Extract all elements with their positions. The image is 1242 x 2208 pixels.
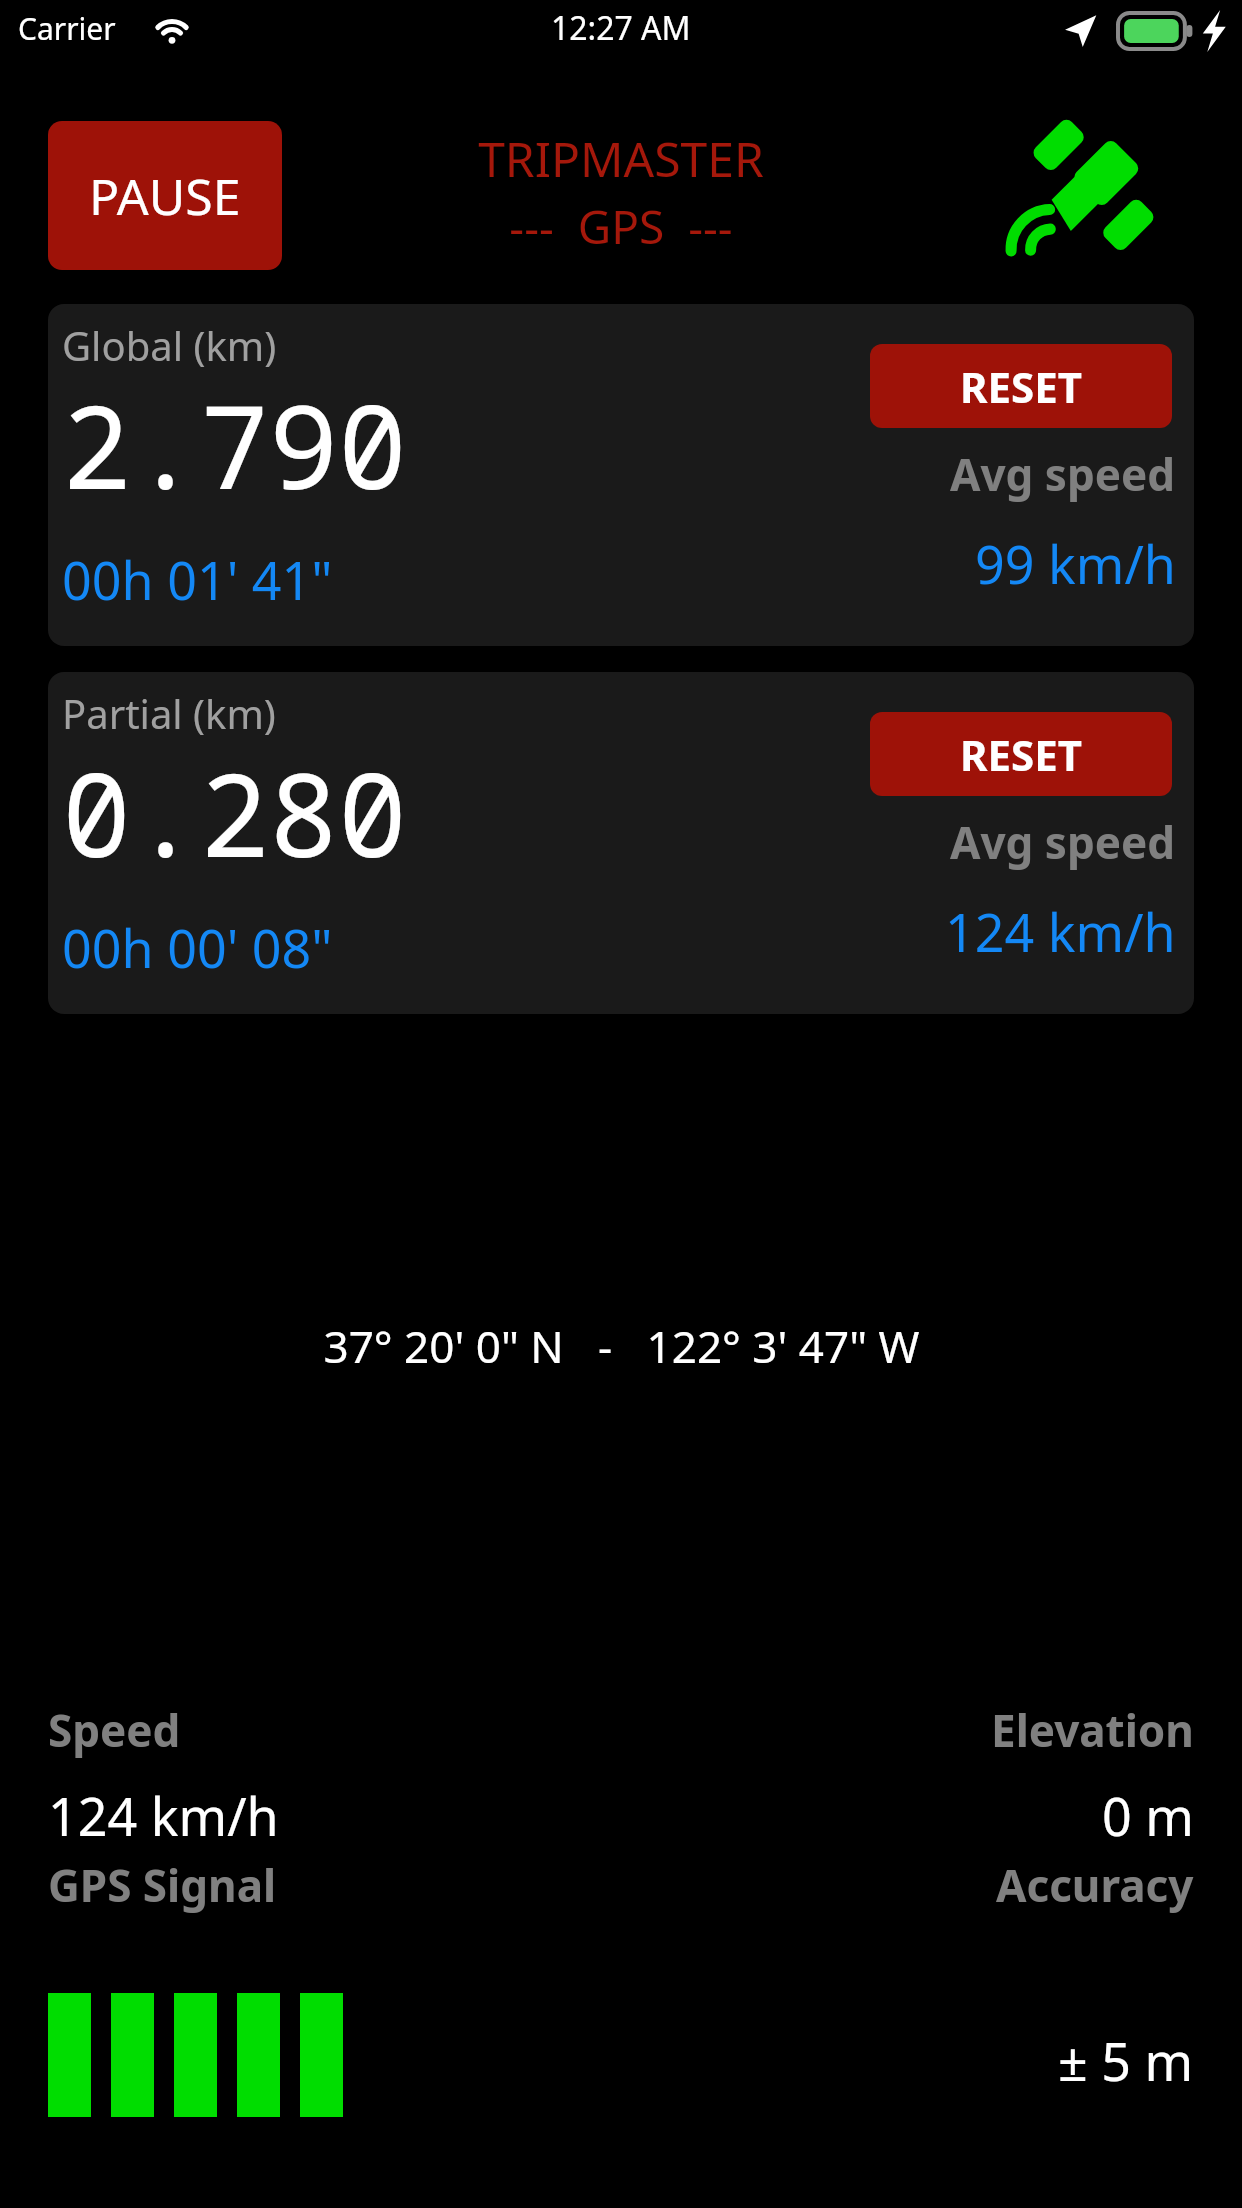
staticText: 00h 01' 41": [62, 544, 333, 615]
staticText: TRIPMASTER: [478, 126, 764, 191]
staticText: 12:27 AM: [551, 6, 691, 50]
staticText: 0.280: [62, 734, 407, 891]
button[interactable]: GPS signal strength 5 of 5: [48, 1993, 343, 2117]
staticText: 124 km/h: [48, 1780, 279, 1851]
button[interactable]: Global (km): [48, 304, 1194, 646]
staticText: Partial (km): [62, 686, 276, 740]
staticText: 2.790: [62, 366, 407, 523]
staticText: --- GPS ---: [509, 195, 733, 258]
staticText: Accuracy: [996, 1855, 1194, 1915]
staticText: Avg speed: [950, 444, 1176, 504]
staticText: 37° 20' 0" N - 122° 3' 47" W: [323, 1316, 920, 1376]
button[interactable]: Partial (km): [48, 672, 1194, 1014]
staticText: GPS Signal: [48, 1855, 277, 1915]
staticText: RESET: [960, 358, 1082, 415]
button[interactable]: RESET: [870, 344, 1172, 428]
staticText: Speed: [48, 1700, 181, 1760]
staticText: 00h 00' 08": [62, 912, 333, 983]
button[interactable]: RESET: [870, 712, 1172, 796]
staticText: Avg speed: [950, 812, 1176, 872]
staticText: PAUSE: [89, 162, 241, 230]
button[interactable]: 37° 20' 0" N - 122° 3' 47" W: [0, 1316, 1242, 1376]
staticText: 99 km/h: [975, 528, 1176, 599]
staticText: Elevation: [991, 1700, 1194, 1760]
button[interactable]: PAUSE: [48, 121, 282, 270]
staticText: Carrier: [18, 8, 116, 49]
staticText: ± 5 m: [1058, 2025, 1194, 2096]
staticText: RESET: [960, 726, 1082, 783]
staticText: Global (km): [62, 318, 277, 372]
staticText: 124 km/h: [945, 896, 1176, 967]
button[interactable]: GPS satellite status: [1000, 105, 1170, 275]
staticText: 0 m: [1102, 1780, 1194, 1851]
